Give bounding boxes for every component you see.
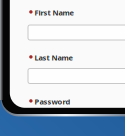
staticText: Password — [34, 96, 70, 107]
staticText: First Name — [34, 7, 73, 18]
button[interactable]: Last Name — [28, 68, 125, 83]
button[interactable]: First Name — [28, 25, 125, 40]
staticText: Last Name — [34, 52, 72, 63]
